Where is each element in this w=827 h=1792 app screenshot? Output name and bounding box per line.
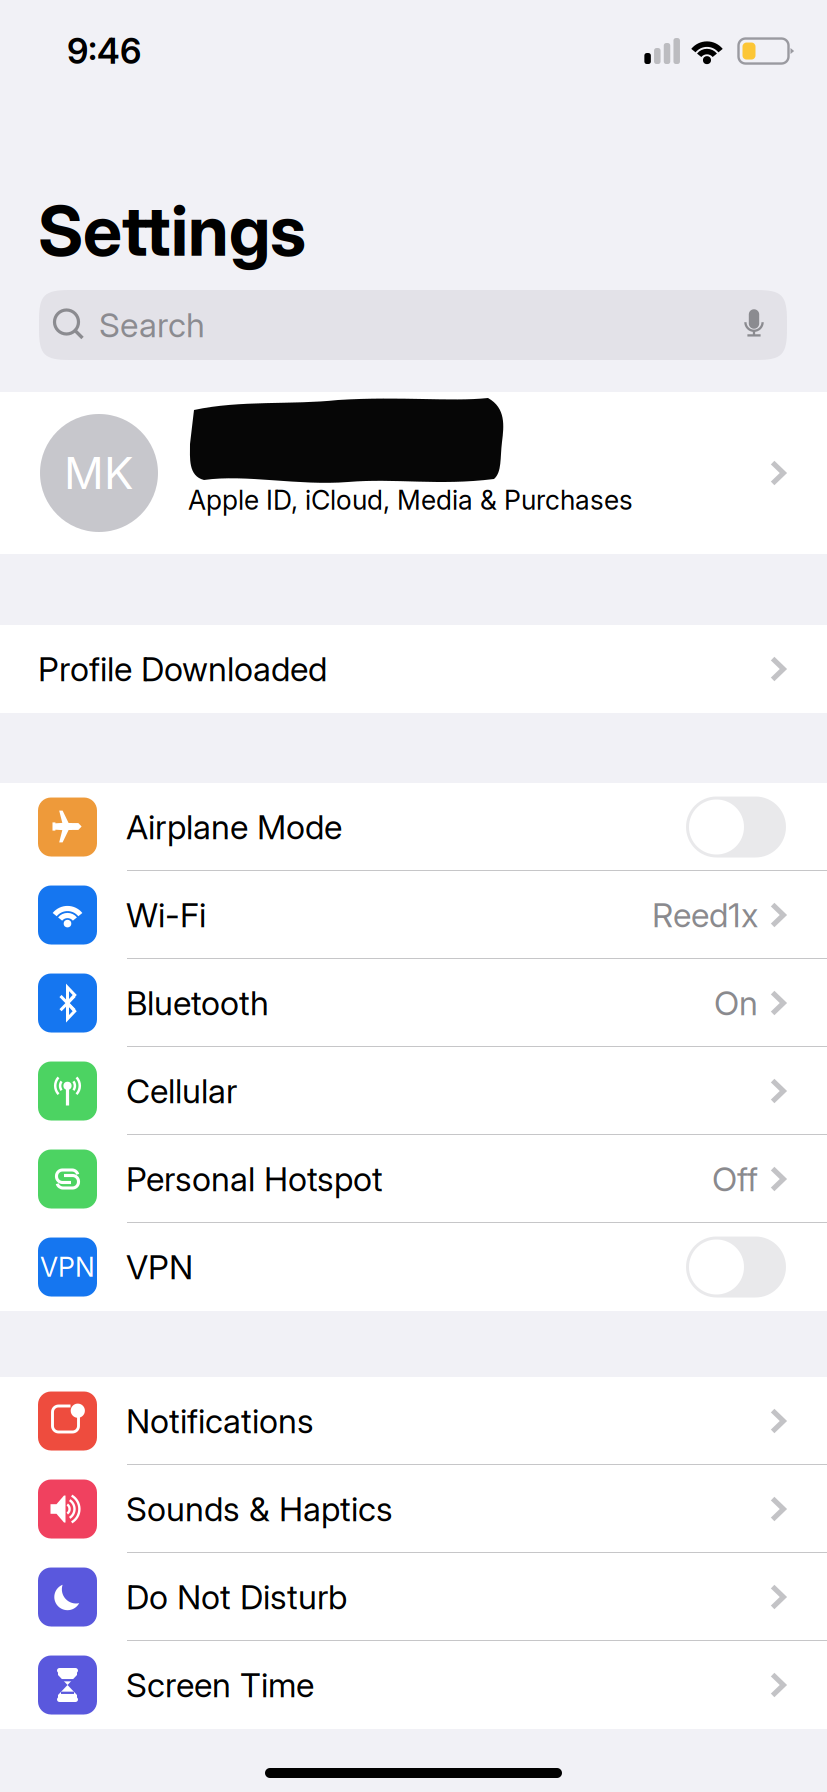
button[interactable]: Do Not Disturb <box>0 1553 827 1641</box>
button[interactable]: Profile Downloaded <box>0 625 827 713</box>
button[interactable]: Airplane Mode <box>0 783 827 871</box>
staticText: Reed1x <box>652 895 758 935</box>
staticText: Cellular <box>126 1071 237 1111</box>
button[interactable]: VPN, off <box>686 1236 786 1297</box>
staticText: Airplane Mode <box>126 807 342 847</box>
staticText: 9:46 <box>67 30 141 72</box>
button[interactable]: Notifications <box>0 1377 827 1465</box>
button[interactable]: Wi-Fi <box>0 871 827 959</box>
staticText: VPN <box>126 1247 193 1287</box>
staticText: Wi-Fi <box>126 895 206 935</box>
staticText: Notifications <box>126 1401 314 1441</box>
staticText: Search <box>99 305 205 345</box>
button[interactable]: Sounds & Haptics <box>0 1465 827 1553</box>
button[interactable]: Dictate <box>739 309 787 341</box>
button[interactable]: Bluetooth <box>0 959 827 1047</box>
staticText: Sounds & Haptics <box>126 1489 393 1529</box>
button[interactable]: Search <box>39 290 787 360</box>
staticText: Do Not Disturb <box>126 1577 347 1617</box>
staticText: Bluetooth <box>126 983 269 1023</box>
staticText: Screen Time <box>126 1665 314 1705</box>
staticText: Off <box>712 1159 758 1199</box>
button[interactable]: Cellular <box>0 1047 827 1135</box>
staticText: On <box>714 983 758 1023</box>
button[interactable]: Screen Time <box>0 1641 827 1729</box>
staticText: Apple ID, iCloud, Media & Purchases <box>188 484 633 516</box>
button[interactable]: Airplane Mode, off <box>686 796 786 857</box>
staticText: Settings <box>38 189 306 272</box>
staticText: Personal Hotspot <box>126 1159 383 1199</box>
button[interactable]: MK <box>0 392 827 554</box>
staticText: Profile Downloaded <box>38 649 327 689</box>
staticText: VPN <box>40 1251 95 1283</box>
button[interactable]: VPN <box>0 1223 827 1311</box>
staticText: MK <box>64 446 134 500</box>
button[interactable]: Personal Hotspot <box>0 1135 827 1223</box>
